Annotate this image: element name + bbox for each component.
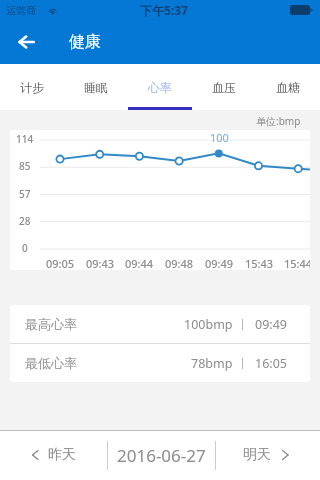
staticText: 114	[16, 132, 34, 146]
staticText: 2016-06-27	[117, 444, 206, 467]
staticText: 100	[210, 130, 229, 145]
staticText: 100bmp	[184, 316, 233, 333]
staticText: 78bmp	[191, 355, 233, 372]
staticText: 下午5:37	[140, 2, 188, 18]
button[interactable]: 2016-06-27	[108, 430, 215, 480]
staticText: 昨天	[48, 446, 76, 464]
button[interactable]: 最低心率	[10, 344, 310, 382]
button[interactable]: 昨天	[0, 430, 107, 480]
staticText: 血压	[212, 80, 236, 95]
button[interactable]: 最高心率	[10, 305, 310, 343]
button[interactable]: 血糖	[256, 64, 320, 110]
button[interactable]: 血压	[192, 64, 256, 110]
staticText: 健康	[69, 32, 101, 52]
staticText: 09:49	[205, 256, 234, 270]
staticText: 85	[19, 159, 31, 173]
staticText: 心率	[148, 80, 172, 95]
staticText: 15:43	[245, 256, 274, 270]
button[interactable]: 睡眠	[64, 64, 128, 110]
staticText: 单位:bmp	[256, 114, 301, 128]
staticText: 睡眠	[84, 80, 108, 95]
button[interactable]: 心率	[128, 64, 192, 110]
button[interactable]: 计步	[0, 64, 64, 110]
staticText: 运营商	[6, 4, 36, 17]
staticText: 0	[22, 241, 28, 255]
staticText: 28	[19, 214, 31, 228]
staticText: 09:44	[125, 256, 154, 270]
staticText: 09:43	[86, 256, 115, 270]
button[interactable]: Back	[10, 26, 42, 58]
staticText: 16:05	[255, 355, 287, 372]
staticText: 09:49	[255, 316, 287, 333]
staticText: 明天	[243, 446, 271, 464]
staticText: 09:48	[165, 256, 194, 270]
staticText: 57	[19, 187, 31, 201]
staticText: 09:05	[46, 256, 75, 270]
button[interactable]: 明天	[216, 430, 320, 480]
staticText: 15:44	[284, 256, 310, 270]
staticText: 血糖	[276, 80, 300, 95]
staticText: 计步	[20, 80, 44, 95]
staticText: 最低心率	[25, 355, 77, 371]
staticText: 最高心率	[25, 316, 77, 332]
